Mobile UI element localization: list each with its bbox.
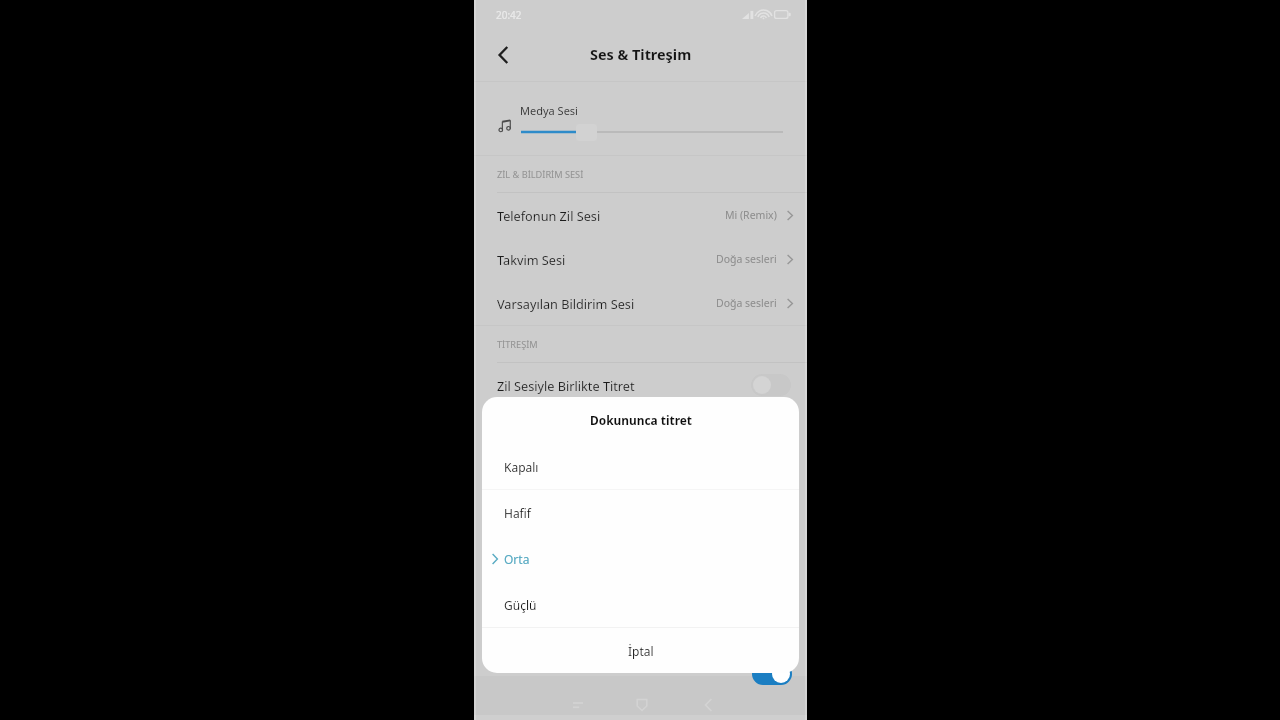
button[interactable]: İptal <box>482 628 799 673</box>
button[interactable]: Güçlü <box>482 582 799 628</box>
staticText: Ses & Titreşim <box>590 45 692 65</box>
staticText: Dokununca titret <box>590 412 692 428</box>
staticText: 20:42 <box>496 8 522 22</box>
staticText: Kapalı <box>504 459 539 475</box>
button[interactable]: Takvim Sesi <box>474 237 807 281</box>
staticText: Orta <box>504 551 530 567</box>
staticText: Medya Sesi <box>520 103 578 118</box>
staticText: TİTREŞİM <box>497 338 538 351</box>
staticText: İptal <box>628 643 654 659</box>
button[interactable]: Sessizde Titret <box>474 407 807 451</box>
staticText: Hafif <box>504 505 531 521</box>
button[interactable]: Hafif <box>482 490 799 536</box>
button[interactable]: Varsayılan Bildirim Sesi <box>474 281 807 325</box>
staticText: Dokununca titret <box>497 465 598 482</box>
button[interactable]: Telefonun Zil Sesi <box>474 193 807 237</box>
button[interactable]: Kapalı <box>482 444 799 490</box>
staticText: Varsayılan Bildirim Sesi <box>497 295 635 312</box>
button[interactable]: Zil Sesiyle Birlikte Titret <box>474 363 807 407</box>
staticText: Telefonun Zil Sesi <box>497 207 601 224</box>
staticText: Doğa sesleri <box>716 252 777 266</box>
button[interactable]: Dokununca titret <box>474 451 807 495</box>
button[interactable]: Orta <box>482 536 799 582</box>
staticText: Doğa sesleri <box>716 296 777 310</box>
staticText: Mi (Remix) <box>725 208 777 222</box>
staticText: Takvim Sesi <box>497 251 566 268</box>
staticText: Güçlü <box>504 597 537 613</box>
staticText: ZİL & BİLDİRİM SESİ <box>497 168 584 181</box>
staticText: Zil Sesiyle Birlikte Titret <box>497 377 635 394</box>
button[interactable]: Back <box>485 37 521 73</box>
